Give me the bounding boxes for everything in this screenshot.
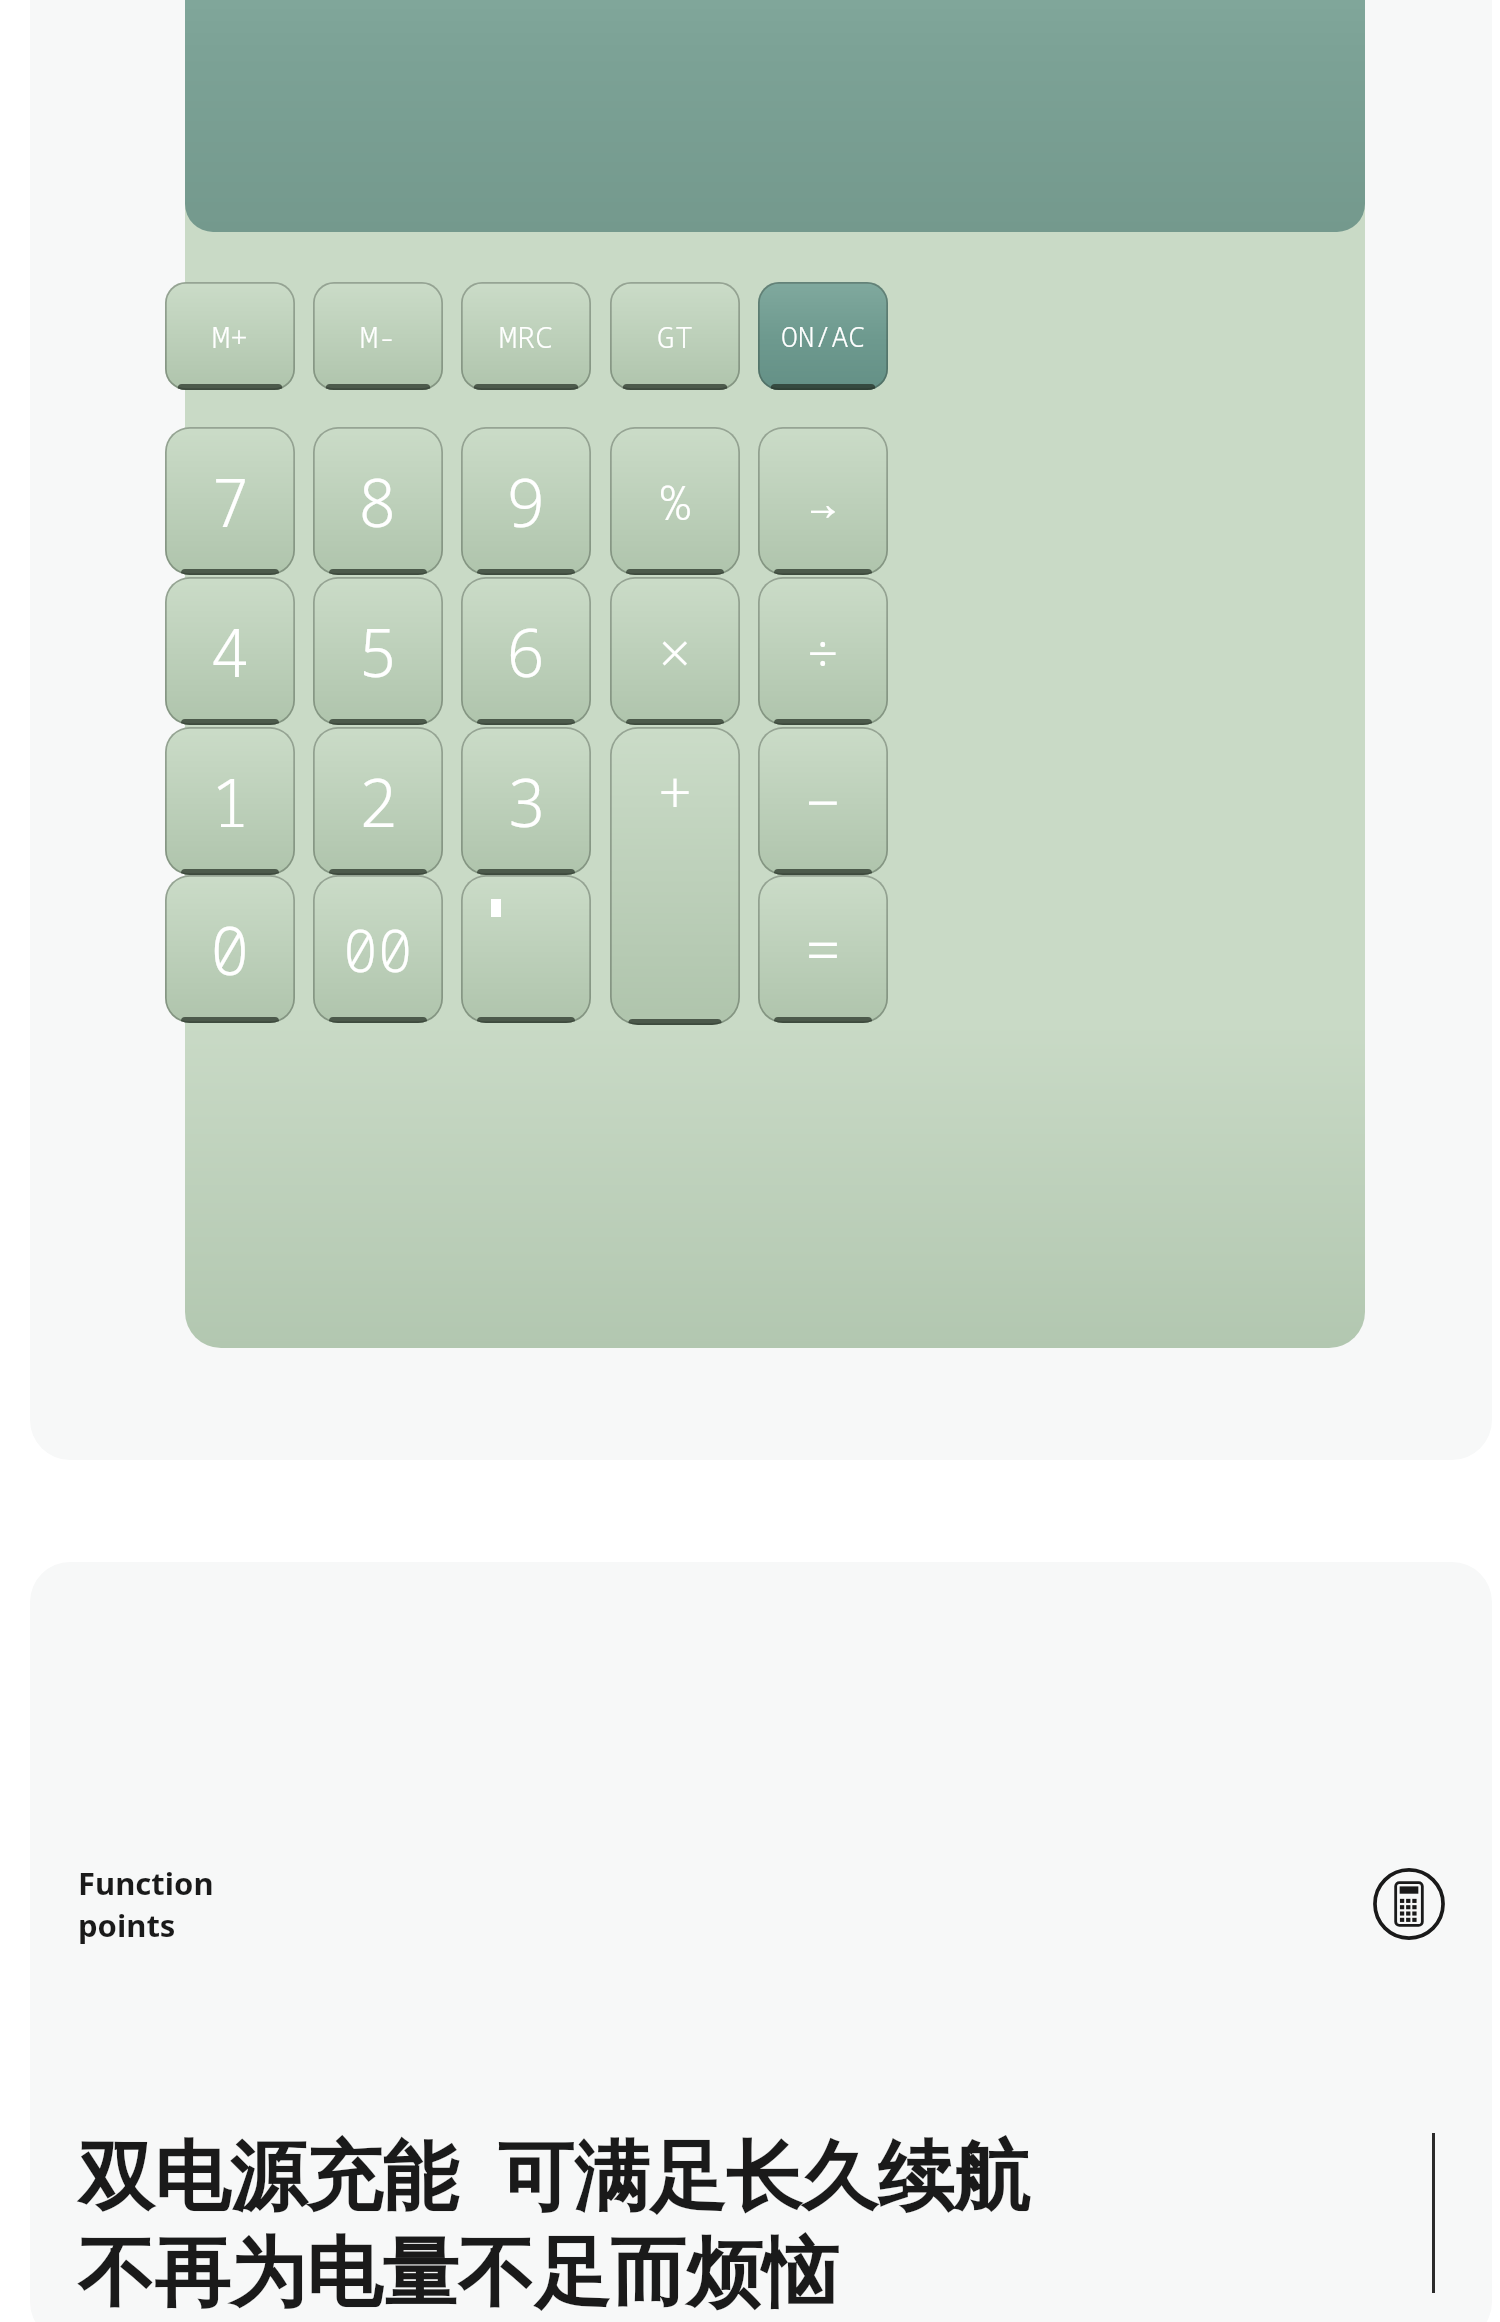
button[interactable]: MRC (461, 282, 591, 390)
staticText: M+ (212, 316, 248, 357)
staticText: 双电源充能 可满足长久续航 (78, 2122, 1030, 2226)
staticText: + (657, 750, 693, 832)
button[interactable]: − (758, 727, 888, 875)
button[interactable]: 7 (165, 427, 295, 575)
staticText: ON/AC (781, 317, 866, 355)
button[interactable]: 0 (165, 875, 295, 1023)
button[interactable]: × (610, 577, 740, 725)
staticText: 1 (210, 756, 250, 846)
staticText: 00 (343, 910, 413, 989)
button[interactable]: 6 (461, 577, 591, 725)
button[interactable]: Function (30, 1562, 1492, 2322)
staticText: 不再为电量不足而烦恼 (78, 2226, 838, 2322)
button[interactable]: % (610, 427, 740, 575)
button[interactable]: M+ (165, 282, 295, 390)
button[interactable]: 2 (313, 727, 443, 875)
staticText: ÷ (806, 613, 840, 689)
staticText: 3 (506, 756, 546, 846)
button[interactable]: 8 (313, 427, 443, 575)
staticText: × (658, 613, 692, 689)
staticText: − (805, 760, 841, 842)
button[interactable]: ON/AC (758, 282, 888, 390)
button[interactable]: 5 (313, 577, 443, 725)
staticText: Function (78, 1862, 214, 1904)
button[interactable]: 4 (165, 577, 295, 725)
staticText: 0 (210, 904, 250, 994)
button[interactable]: 9 (461, 427, 591, 575)
button[interactable] (461, 875, 591, 1023)
staticText: M- (360, 316, 396, 357)
staticText: 5 (358, 606, 398, 696)
staticText: % (661, 469, 690, 534)
button[interactable]: 3 (461, 727, 591, 875)
staticText: 9 (506, 456, 546, 546)
button[interactable]: Backspace (758, 427, 888, 575)
staticText: 4 (210, 606, 250, 696)
button[interactable]: GT (610, 282, 740, 390)
button[interactable]: + (610, 727, 740, 1025)
button[interactable]: = (758, 875, 888, 1023)
button[interactable]: 1 (165, 727, 295, 875)
staticText: 2 (358, 756, 398, 846)
staticText: 7 (210, 456, 250, 546)
button[interactable] (30, 0, 1492, 1460)
staticText: points (78, 1904, 176, 1946)
staticText: GT (657, 316, 693, 357)
staticText: → (808, 467, 838, 535)
staticText: = (805, 908, 841, 990)
button[interactable]: ÷ (758, 577, 888, 725)
button[interactable]: 00 (313, 875, 443, 1023)
staticText: 8 (358, 456, 398, 546)
button[interactable]: M- (313, 282, 443, 390)
button[interactable]: Calculator (1372, 1867, 1446, 1941)
staticText: MRC (499, 316, 553, 357)
staticText: 6 (506, 606, 546, 696)
